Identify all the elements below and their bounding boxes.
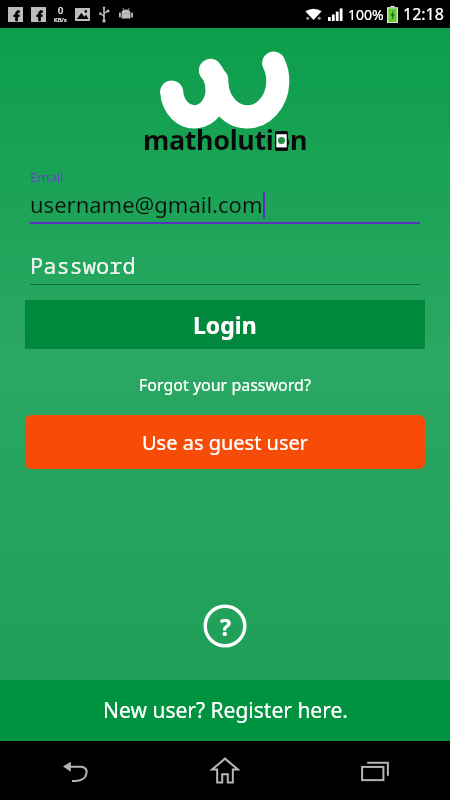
button[interactable]: Back bbox=[0, 741, 150, 800]
staticText: username@gmail.com bbox=[30, 189, 263, 219]
staticText: Use as guest user bbox=[142, 429, 309, 456]
staticText: New user? Register here. bbox=[103, 696, 348, 725]
staticText: Login bbox=[193, 309, 257, 340]
staticText: Forgot your password? bbox=[139, 374, 311, 396]
staticText: KB/s bbox=[54, 16, 67, 24]
button[interactable]: Recent apps bbox=[300, 741, 450, 800]
button[interactable]: Login bbox=[25, 300, 425, 349]
staticText: 100% bbox=[348, 5, 384, 24]
staticText: matholution bbox=[143, 121, 308, 158]
staticText: Email bbox=[30, 168, 64, 186]
staticText: 0 bbox=[58, 4, 64, 16]
staticText: ? bbox=[220, 611, 231, 642]
button[interactable]: Home bbox=[150, 741, 300, 800]
staticText: 12:18 bbox=[403, 3, 444, 25]
staticText: Password bbox=[30, 250, 136, 280]
button[interactable]: Help bbox=[202, 603, 248, 649]
button[interactable]: Use as guest user bbox=[25, 415, 425, 469]
button[interactable]: New user? Register here. bbox=[0, 680, 450, 741]
button[interactable]: Forgot your password? bbox=[129, 371, 321, 399]
